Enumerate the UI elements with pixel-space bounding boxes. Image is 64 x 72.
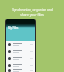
staticText: Synchronize, organize and: [12, 7, 53, 11]
button[interactable]: [6, 69, 35, 72]
staticText: My Files: [8, 26, 19, 30]
staticText: share your files: [20, 12, 44, 16]
button[interactable]: [6, 41, 35, 48]
button[interactable]: [6, 55, 35, 62]
button[interactable]: [6, 48, 35, 55]
button[interactable]: [6, 62, 35, 69]
